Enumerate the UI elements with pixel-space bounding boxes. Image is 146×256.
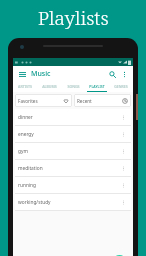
button[interactable]: More options for energy: [119, 130, 128, 139]
button[interactable]: Favorites: [15, 94, 72, 107]
button[interactable]: More options for working/study: [119, 198, 128, 207]
staticText: Recent: [77, 98, 92, 104]
button[interactable]: dinner: [15, 109, 131, 125]
button[interactable]: Search: [106, 68, 118, 80]
staticText: Music: [31, 69, 51, 79]
staticText: running: [18, 182, 37, 189]
button[interactable]: More options for gym: [119, 147, 128, 156]
button[interactable]: energy: [15, 126, 131, 142]
staticText: GENRES: [114, 84, 128, 89]
button[interactable]: Recent: [74, 94, 131, 107]
button[interactable]: More options: [118, 68, 130, 80]
button[interactable]: More options for running: [119, 181, 128, 190]
button[interactable]: meditation: [15, 160, 131, 176]
button[interactable]: running: [15, 177, 131, 193]
staticText: PLAYLIST: [89, 84, 105, 89]
button[interactable]: PLAYLIST: [85, 81, 109, 92]
button[interactable]: Play all: [112, 255, 127, 256]
button[interactable]: GENRES: [109, 81, 133, 92]
button[interactable]: More options for dinner: [119, 113, 128, 122]
staticText: ALBUMS: [42, 84, 57, 89]
button[interactable]: ARTISTS: [13, 81, 37, 92]
button[interactable]: More options for meditation: [119, 164, 128, 173]
staticText: Favorites: [18, 98, 38, 104]
staticText: SONGS: [67, 84, 80, 89]
button[interactable]: gym: [15, 143, 131, 159]
button[interactable]: Open navigation menu: [16, 68, 28, 80]
staticText: meditation: [18, 165, 43, 172]
staticText: Playlists: [38, 5, 109, 31]
staticText: energy: [18, 131, 34, 138]
button[interactable]: SONGS: [61, 81, 85, 92]
staticText: ARTISTS: [18, 84, 32, 89]
button[interactable]: working/study: [15, 194, 131, 210]
staticText: gym: [18, 148, 28, 155]
button[interactable]: ALBUMS: [37, 81, 61, 92]
staticText: working/study: [18, 199, 51, 206]
staticText: dinner: [18, 114, 33, 121]
